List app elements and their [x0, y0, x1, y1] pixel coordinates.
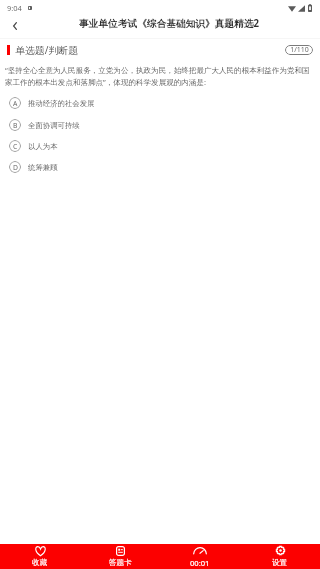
staticText: 以人为本: [28, 142, 58, 151]
staticText: 设置: [272, 558, 288, 566]
button[interactable]: Favorite: [0, 544, 80, 569]
staticText: 1/110: [290, 45, 309, 55]
staticText: 事业单位考试《综合基础知识》真题精选2: [79, 17, 259, 30]
staticText: 收藏: [32, 558, 48, 566]
staticText: 统筹兼顾: [28, 163, 58, 172]
staticText: 全面协调可持续: [28, 121, 80, 130]
button[interactable]: Timer: [160, 544, 240, 569]
staticText: “坚持全心全意为人民服务，立党为公，执政为民，始终把最广大人民的根本利益作为党和…: [5, 65, 310, 75]
staticText: 答题卡: [109, 558, 132, 566]
button[interactable]: Settings: [240, 544, 320, 569]
staticText: B: [13, 121, 18, 130]
staticText: C: [13, 142, 18, 151]
button[interactable]: Answer sheet: [80, 544, 160, 569]
staticText: 家工作的根本出发点和落脚点”，体现的科学发展观的内涵是:: [5, 77, 206, 87]
staticText: 00:01: [190, 558, 210, 566]
button[interactable]: B: [0, 115, 320, 135]
staticText: D: [13, 163, 18, 172]
button[interactable]: C: [0, 136, 320, 156]
staticText: A: [13, 99, 18, 108]
staticText: 推动经济的社会发展: [28, 99, 95, 108]
staticText: 9:04: [7, 3, 22, 13]
button[interactable]: D: [0, 157, 320, 177]
staticText: 单选题/判断题: [15, 43, 79, 57]
button[interactable]: Back: [3, 14, 27, 37]
button[interactable]: 1/110: [285, 45, 313, 55]
button[interactable]: A: [0, 93, 320, 113]
